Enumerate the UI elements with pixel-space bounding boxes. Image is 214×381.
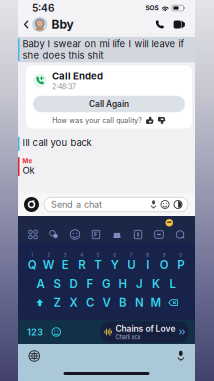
staticText: T bbox=[94, 258, 102, 272]
staticText: Q bbox=[28, 258, 37, 272]
button[interactable]: Friends bbox=[48, 228, 60, 240]
staticText: M bbox=[150, 296, 161, 310]
staticText: 3 bbox=[64, 252, 67, 258]
staticText: C bbox=[86, 296, 94, 310]
button[interactable]: Good call quality bbox=[146, 116, 154, 124]
button[interactable]: L bbox=[164, 277, 181, 291]
button[interactable]: D bbox=[65, 277, 82, 291]
button[interactable]: C bbox=[82, 296, 98, 310]
staticText: Ill call you back bbox=[22, 137, 91, 148]
staticText: J bbox=[136, 277, 143, 291]
staticText: 5:46 bbox=[32, 2, 54, 14]
button[interactable]: 8 bbox=[139, 252, 156, 272]
staticText: W bbox=[43, 258, 55, 272]
staticText: How was your call quality? bbox=[52, 116, 142, 125]
staticText: Chains of Love bbox=[115, 323, 175, 334]
staticText: Call Again bbox=[89, 99, 129, 109]
button[interactable]: N bbox=[131, 296, 148, 310]
button[interactable]: Backspace bbox=[164, 298, 182, 308]
staticText: Call Ended bbox=[52, 70, 103, 82]
staticText: Y bbox=[111, 258, 119, 272]
button[interactable]: G bbox=[98, 277, 115, 291]
button[interactable]: Call Again bbox=[33, 96, 185, 112]
button[interactable]: Search bbox=[174, 228, 186, 240]
staticText: 123 bbox=[27, 326, 43, 338]
staticText: 5 bbox=[97, 252, 100, 258]
staticText: 2 bbox=[47, 252, 50, 258]
staticText: V bbox=[102, 296, 110, 310]
staticText: 1 bbox=[31, 252, 33, 258]
staticText: Charli xcx bbox=[115, 334, 140, 341]
staticText: 6 bbox=[113, 252, 116, 258]
staticText: Me bbox=[22, 157, 32, 165]
button[interactable]: K bbox=[148, 277, 164, 291]
button[interactable]: 3 bbox=[57, 252, 73, 272]
staticText: X bbox=[69, 296, 77, 310]
button[interactable]: 7 bbox=[123, 252, 139, 272]
staticText: K bbox=[152, 277, 160, 291]
button[interactable]: Voice call bbox=[151, 17, 168, 32]
button[interactable]: Now playing: Chains of Love by Charli xc… bbox=[100, 321, 195, 343]
button[interactable]: B bbox=[115, 296, 131, 310]
button[interactable]: Games bbox=[132, 228, 144, 240]
staticText: A bbox=[36, 277, 44, 291]
staticText: U bbox=[127, 258, 135, 272]
staticText: L bbox=[169, 277, 175, 291]
button[interactable]: Back bbox=[18, 18, 33, 31]
staticText: R bbox=[78, 258, 85, 272]
button[interactable]: J bbox=[131, 277, 148, 291]
staticText: Baby I swear on mi life I will leave if … bbox=[22, 38, 184, 61]
button[interactable]: 1 bbox=[24, 252, 40, 272]
button[interactable]: V bbox=[98, 296, 115, 310]
button[interactable]: M bbox=[148, 296, 164, 310]
staticText: 7 bbox=[130, 252, 133, 258]
button[interactable]: 123 bbox=[18, 322, 43, 342]
staticText: H bbox=[118, 277, 127, 291]
staticText: SOS bbox=[145, 4, 158, 12]
staticText: F bbox=[86, 277, 93, 291]
button[interactable]: 4 bbox=[73, 252, 90, 272]
staticText: O bbox=[160, 258, 169, 272]
staticText: I bbox=[146, 258, 149, 272]
button[interactable]: X bbox=[65, 296, 82, 310]
button[interactable]: Voice note bbox=[151, 200, 161, 209]
button[interactable]: Bitmoji bbox=[174, 200, 188, 208]
staticText: 2:48:37 bbox=[52, 82, 76, 91]
staticText: E bbox=[62, 258, 69, 272]
button[interactable]: Shift bbox=[31, 298, 49, 308]
staticText: 9 bbox=[163, 252, 166, 258]
button[interactable]: Poor call quality bbox=[157, 116, 166, 124]
button[interactable]: Switch keyboard bbox=[18, 346, 39, 366]
staticText: Bby bbox=[51, 17, 73, 32]
button[interactable]: F bbox=[82, 277, 98, 291]
button[interactable]: H bbox=[115, 277, 131, 291]
button[interactable]: Apps bbox=[27, 228, 39, 240]
button[interactable]: A bbox=[32, 277, 49, 291]
button[interactable]: 9 bbox=[156, 252, 172, 272]
button[interactable]: Z bbox=[49, 296, 65, 310]
staticText: F bbox=[94, 231, 98, 238]
button[interactable]: Dictation bbox=[178, 345, 195, 366]
button[interactable]: 0 bbox=[172, 252, 189, 272]
staticText: Send a chat bbox=[51, 199, 102, 210]
button[interactable]: Sounds bbox=[153, 228, 165, 240]
button[interactable]: 6 bbox=[106, 252, 123, 272]
button[interactable]: Stickers bbox=[161, 200, 174, 208]
staticText: 0 bbox=[179, 252, 182, 258]
button[interactable]: S bbox=[49, 277, 65, 291]
button[interactable]: Emoji keyboard bbox=[43, 324, 60, 340]
staticText: Ok bbox=[22, 165, 34, 176]
staticText: N bbox=[135, 296, 144, 310]
staticText: G bbox=[102, 277, 111, 291]
button[interactable]: GIFs bbox=[90, 228, 102, 240]
staticText: Z bbox=[53, 296, 60, 310]
staticText: P bbox=[177, 258, 184, 272]
staticText: B bbox=[119, 296, 127, 310]
button[interactable]: Video call bbox=[168, 17, 195, 31]
staticText: 8 bbox=[146, 252, 149, 258]
button[interactable]: Stickers bbox=[69, 228, 81, 240]
button[interactable]: Bitmoji bbox=[111, 228, 123, 240]
button[interactable]: 5 bbox=[90, 252, 106, 272]
button[interactable]: Camera bbox=[18, 197, 44, 212]
button[interactable]: 2 bbox=[40, 252, 57, 272]
